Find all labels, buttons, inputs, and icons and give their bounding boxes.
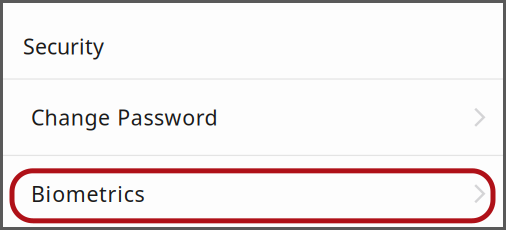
- staticText: Change Password: [31, 103, 217, 132]
- button[interactable]: Biometrics: [3, 156, 503, 230]
- staticText: Security: [23, 32, 104, 61]
- staticText: Biometrics: [31, 179, 144, 208]
- button[interactable]: Change Password: [3, 80, 503, 155]
